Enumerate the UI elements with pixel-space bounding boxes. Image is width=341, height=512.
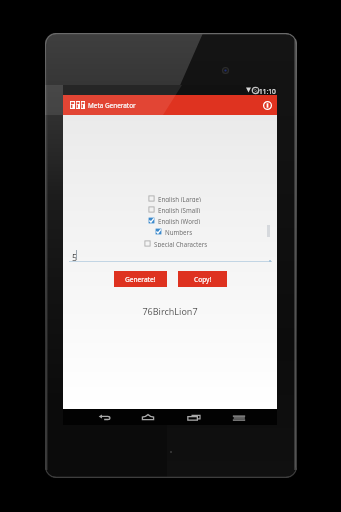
staticText: 76BirchLion7	[63, 305, 277, 317]
button[interactable]: Recents	[181, 409, 206, 425]
staticText: Special Characters	[154, 240, 208, 247]
button[interactable]: English (Large)	[148, 195, 201, 202]
button[interactable]: Special Characters	[144, 240, 208, 247]
staticText: English (Small)	[158, 206, 201, 213]
staticText: English (Large)	[158, 195, 201, 202]
button[interactable]: Info	[257, 95, 277, 115]
button[interactable]: Menu	[226, 409, 251, 425]
staticText: Numbers	[165, 228, 193, 235]
staticText: Generate!	[125, 275, 156, 284]
staticText: Copy!	[194, 275, 212, 284]
staticText: 5	[72, 251, 78, 263]
button[interactable]: Numbers	[155, 228, 193, 235]
button[interactable]: Copy!	[178, 271, 227, 287]
staticText: English (Word)	[158, 217, 200, 224]
button[interactable]: Back	[92, 409, 117, 425]
button[interactable]: Generate!	[114, 271, 167, 287]
staticText: Meta Generator	[88, 101, 136, 110]
button[interactable]: English (Small)	[148, 206, 201, 213]
button[interactable]: Home	[135, 409, 160, 425]
button[interactable]: English (Word)	[148, 217, 200, 224]
staticText: 11:10	[259, 87, 276, 96]
